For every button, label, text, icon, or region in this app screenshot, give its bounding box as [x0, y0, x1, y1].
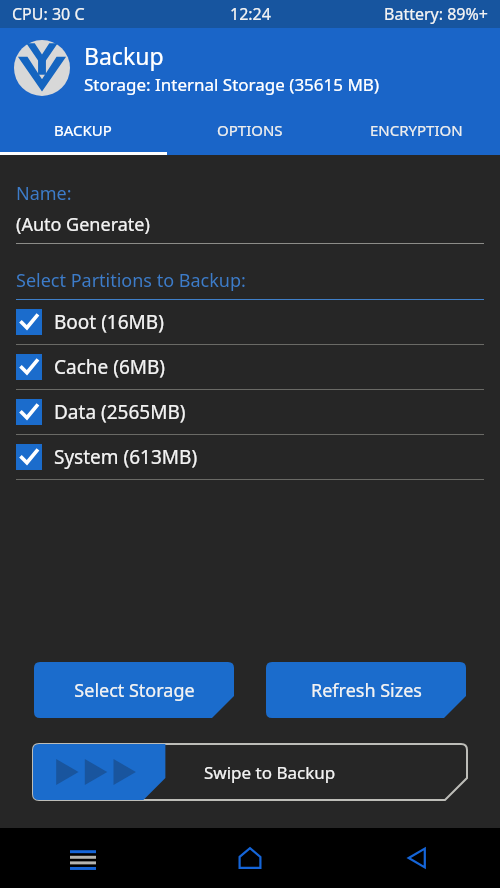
staticText: Backup [84, 40, 164, 71]
button[interactable]: OPTIONS [166, 108, 333, 152]
staticText: ENCRYPTION [370, 120, 463, 140]
staticText: Data (2565MB) [54, 399, 186, 425]
staticText: Select Partitions to Backup: [16, 268, 246, 293]
staticText: Cache (6MB) [54, 354, 166, 380]
staticText: Refresh Sizes [311, 678, 422, 703]
staticText: OPTIONS [217, 120, 283, 140]
staticText: Boot (16MB) [54, 309, 164, 335]
staticText: Storage: Internal Storage (35615 MB) [84, 73, 380, 96]
button[interactable]: Boot (16MB) [0, 300, 500, 345]
staticText: (Auto Generate) [16, 212, 150, 237]
button[interactable]: Select Storage [34, 662, 234, 718]
button[interactable]: Back [333, 828, 500, 888]
button[interactable]: ENCRYPTION [333, 108, 500, 152]
button[interactable]: Refresh Sizes [266, 662, 466, 718]
staticText: System (613MB) [54, 444, 198, 470]
staticText: Name: [16, 181, 72, 206]
button[interactable]: System (613MB) [0, 435, 500, 480]
button[interactable]: Home [166, 828, 333, 888]
button[interactable]: Menu [0, 828, 166, 888]
staticText: 12:24 [230, 3, 271, 25]
button[interactable]: Swipe to Backup [33, 744, 467, 800]
button[interactable]: Data (2565MB) [0, 390, 500, 435]
button[interactable]: Cache (6MB) [0, 345, 500, 390]
button[interactable]: BACKUP [0, 108, 166, 152]
staticText: CPU: 30 C [12, 3, 85, 25]
staticText: Swipe to Backup [204, 761, 336, 784]
staticText: Battery: 89%+ [384, 3, 488, 25]
button[interactable]: (Auto Generate) [16, 212, 484, 244]
staticText: BACKUP [54, 120, 112, 140]
staticText: Select Storage [74, 678, 195, 703]
